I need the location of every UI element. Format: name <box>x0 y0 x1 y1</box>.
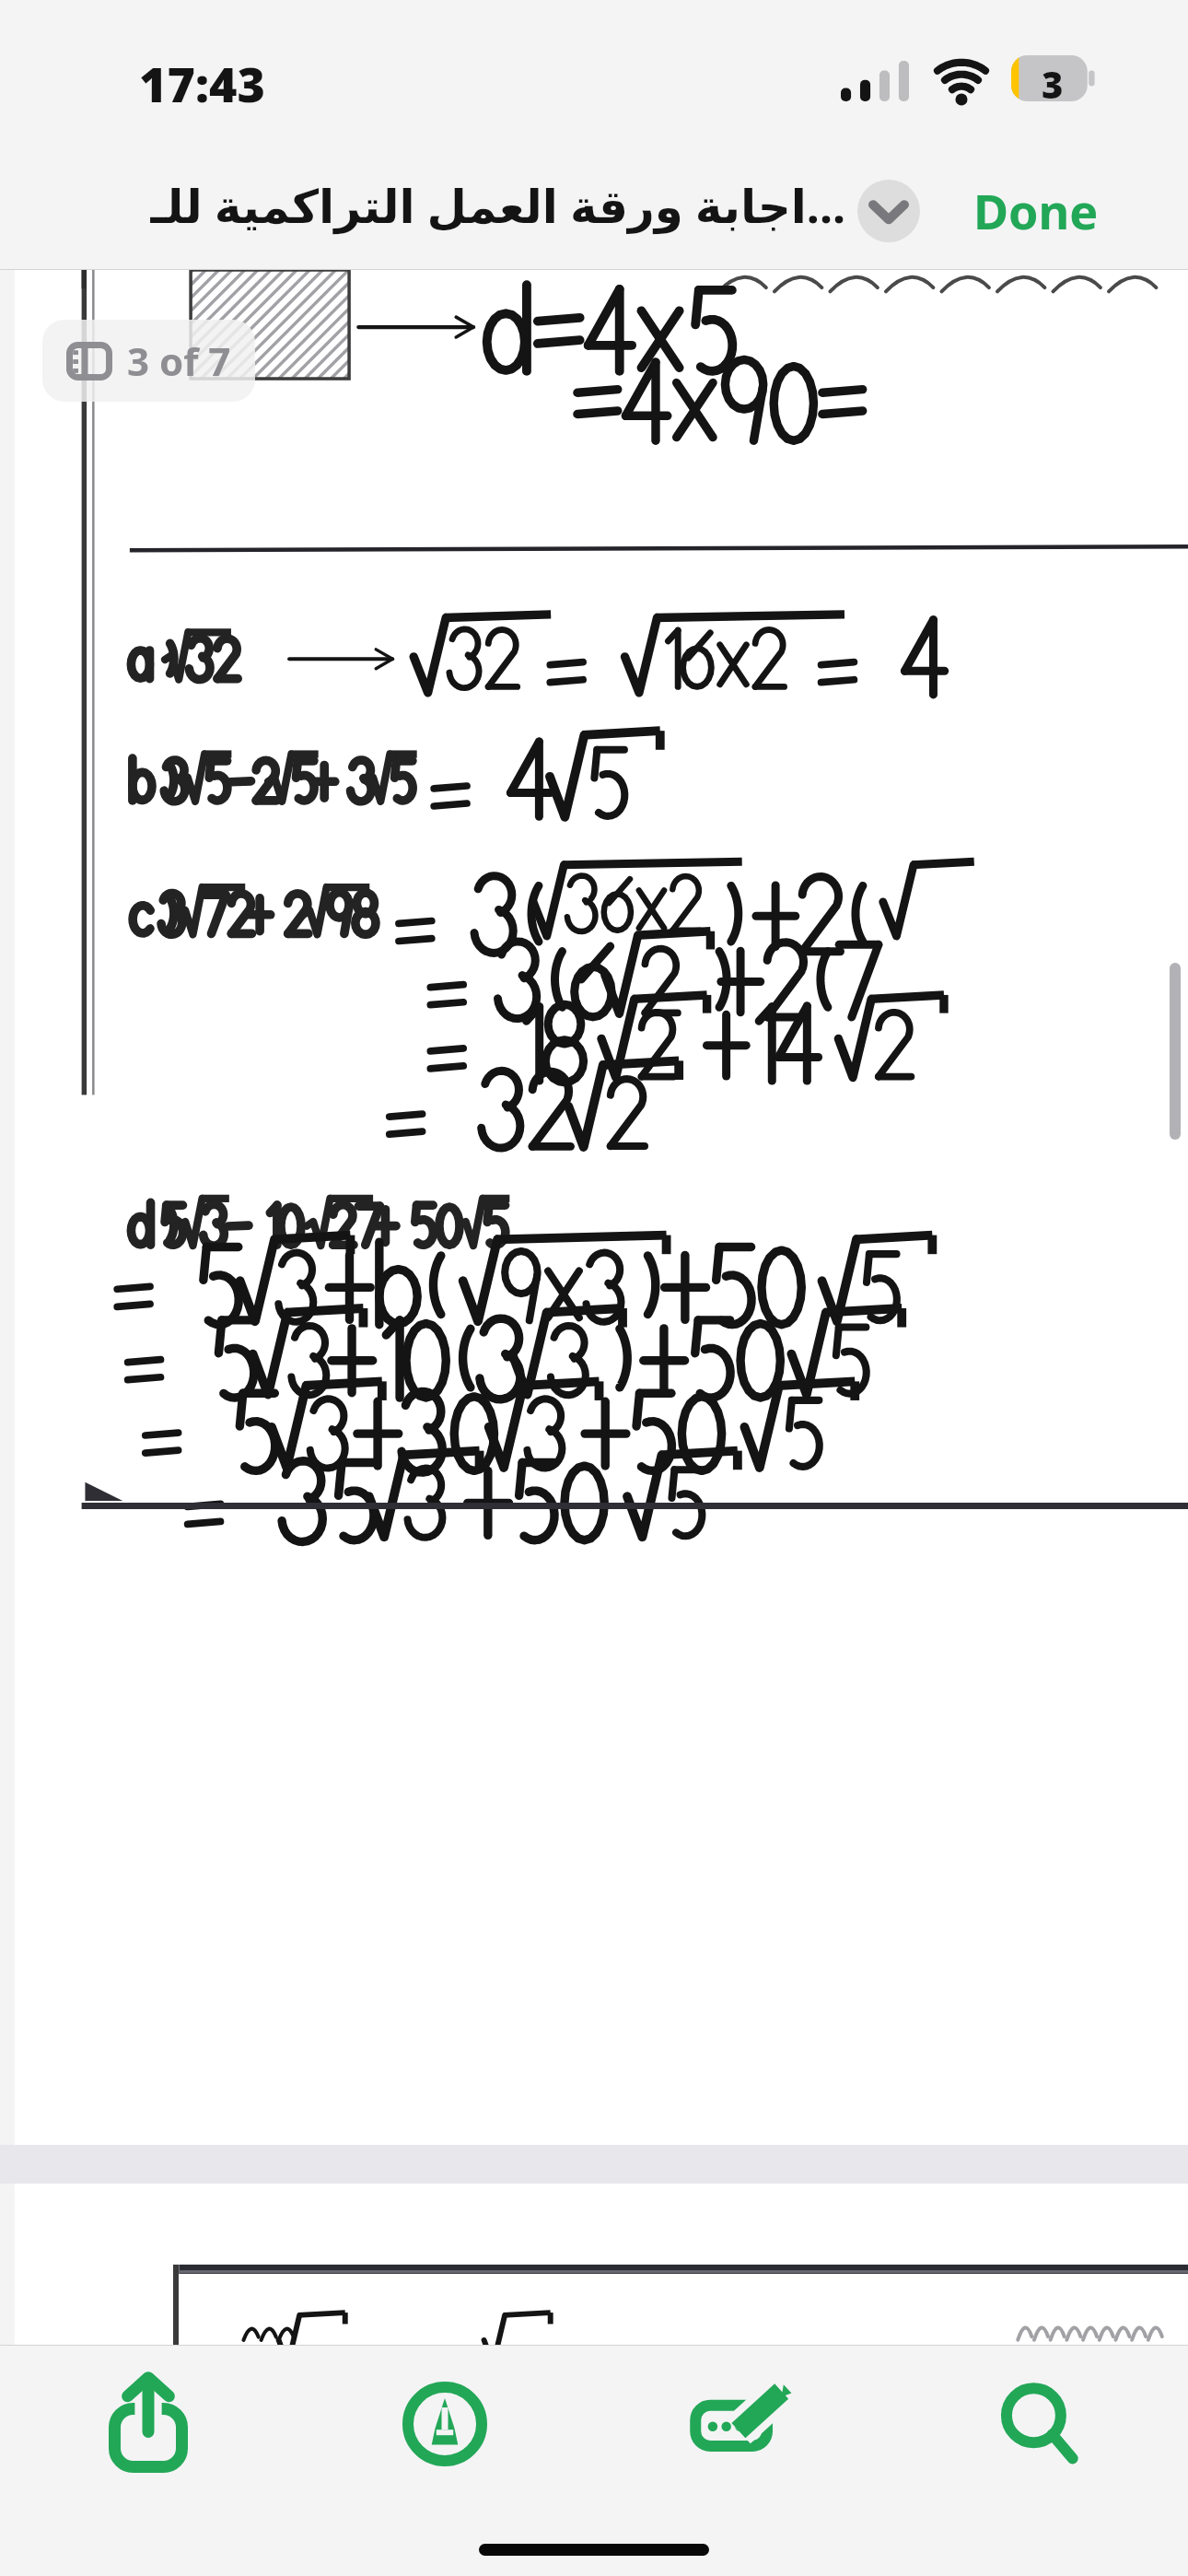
button[interactable]: Share <box>0 2345 297 2503</box>
button[interactable] <box>15 2184 1188 2346</box>
button[interactable]: Done <box>973 178 1099 243</box>
button[interactable]: Markup <box>297 2345 593 2503</box>
button[interactable]: Show document options <box>857 180 920 242</box>
staticText: 17:43 <box>139 51 265 116</box>
staticText: 3 <box>1042 59 1064 109</box>
button[interactable]: اجابة ورقة العمل التراكمية للـ... <box>33 174 845 237</box>
staticText: Done <box>973 178 1099 243</box>
staticText: 3 of 7 <box>127 334 231 387</box>
button[interactable]: Search <box>891 2345 1188 2503</box>
button[interactable]: Fill and Sign <box>593 2345 891 2503</box>
button[interactable] <box>15 270 1188 2145</box>
button[interactable]: 3 of 7 <box>42 320 255 402</box>
